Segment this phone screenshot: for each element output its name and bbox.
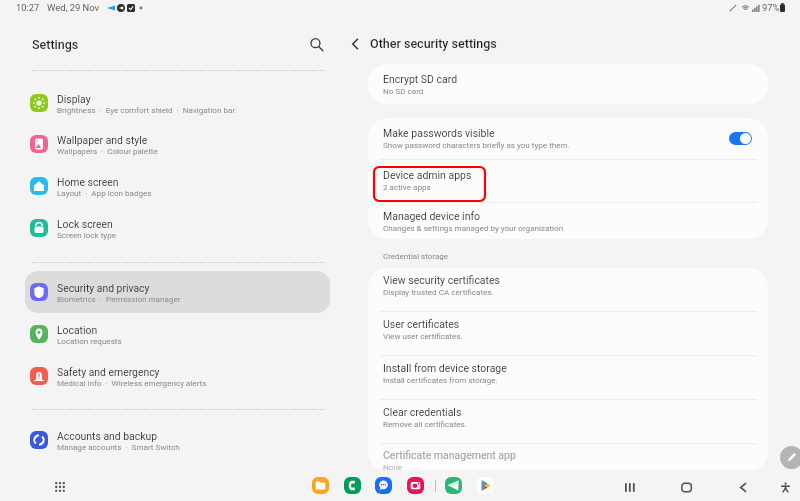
staticText: Wallpapers · Colour palette xyxy=(57,146,158,155)
button[interactable]: Messages xyxy=(375,477,392,494)
button[interactable]: Managed device info xyxy=(368,205,768,249)
staticText: Location xyxy=(57,324,98,336)
staticText: Display trusted CA certificates. xyxy=(383,287,494,296)
button[interactable]: Apps xyxy=(50,477,69,496)
button[interactable]: Security and privacy xyxy=(25,271,330,313)
button[interactable]: Wallpaper and style xyxy=(25,123,330,165)
button[interactable]: Files xyxy=(312,477,329,494)
staticText: Location requests xyxy=(57,336,122,345)
staticText: Layout · App icon badges xyxy=(57,188,152,197)
button[interactable]: Display xyxy=(25,82,330,124)
button[interactable]: Make passwords visible toggle xyxy=(729,132,752,145)
staticText: Accounts and backup xyxy=(57,430,157,442)
button[interactable]: Back xyxy=(344,33,366,55)
button[interactable]: Share xyxy=(445,477,462,494)
staticText: Settings xyxy=(32,37,79,52)
staticText: 2 active apps xyxy=(383,182,431,191)
staticText: Security and privacy xyxy=(57,282,150,294)
button[interactable]: Clear credentials xyxy=(368,401,768,445)
button[interactable]: Accessibility xyxy=(774,476,796,498)
button[interactable]: Home xyxy=(675,476,697,498)
staticText: Encrypt SD card xyxy=(383,73,458,85)
button[interactable]: Home screen xyxy=(25,165,330,207)
staticText: Safety and emergency xyxy=(57,366,160,378)
button[interactable]: Install from device storage xyxy=(368,357,768,401)
button[interactable]: Encrypt SD card xyxy=(368,68,768,112)
staticText: Home screen xyxy=(57,176,119,188)
staticText: Install certificates from storage. xyxy=(383,375,498,384)
button[interactable]: Camera xyxy=(407,477,424,494)
button[interactable]: Back xyxy=(732,476,754,498)
staticText: Device admin apps xyxy=(383,169,472,181)
button[interactable]: Edit xyxy=(780,446,800,469)
staticText: 97% xyxy=(762,2,780,13)
staticText: Show password characters briefly as you … xyxy=(383,140,570,149)
staticText: Credential storage xyxy=(383,252,448,261)
staticText: Display xyxy=(57,93,91,105)
staticText: Managed device info xyxy=(383,210,481,222)
staticText: View user certificates. xyxy=(383,331,463,340)
staticText: Screen lock type xyxy=(57,230,117,239)
staticText: Install from device storage xyxy=(383,362,507,374)
button[interactable]: Make passwords visible xyxy=(368,122,768,166)
staticText: 10:27 xyxy=(16,2,40,13)
staticText: Changes & settings managed by your organ… xyxy=(383,223,564,232)
button[interactable]: Search xyxy=(303,31,329,57)
button[interactable]: Certificate management app xyxy=(368,444,768,488)
staticText: Wallpaper and style xyxy=(57,134,148,146)
button[interactable]: Recents xyxy=(618,476,640,498)
button[interactable]: Accounts and backup xyxy=(25,419,330,461)
staticText: Remove all certificates. xyxy=(383,419,467,428)
button[interactable]: User certificates xyxy=(368,313,768,357)
staticText: Biometrics · Permission manager xyxy=(57,294,181,303)
button[interactable]: View security certificates xyxy=(368,269,768,313)
button[interactable]: Safety and emergency xyxy=(25,355,330,397)
staticText: View security certificates xyxy=(383,274,501,286)
button[interactable]: Location xyxy=(25,313,330,355)
staticText: Make passwords visible xyxy=(383,127,495,139)
staticText: Manage accounts · Smart Switch xyxy=(57,442,180,451)
staticText: Wed, 29 Nov xyxy=(47,2,100,13)
staticText: No SD card xyxy=(383,86,424,95)
staticText: User certificates xyxy=(383,318,460,330)
button[interactable]: Lock screen xyxy=(25,207,330,249)
staticText: Brightness · Eye comfort shield · Naviga… xyxy=(57,105,236,114)
staticText: None xyxy=(383,462,403,471)
staticText: Certificate management app xyxy=(383,449,516,461)
button[interactable]: Phone xyxy=(344,477,361,494)
staticText: Medical info · Wireless emergency alerts xyxy=(57,378,207,387)
staticText: Other security settings xyxy=(370,36,497,51)
staticText: Clear credentials xyxy=(383,406,462,418)
button[interactable]: Play Store xyxy=(477,477,494,494)
staticText: Lock screen xyxy=(57,218,113,230)
button[interactable]: Device admin apps xyxy=(368,164,768,208)
